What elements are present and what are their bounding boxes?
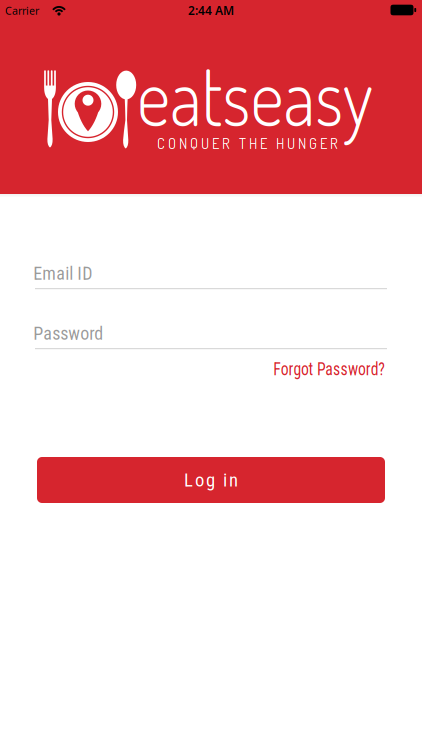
- button[interactable]: L o g i n: [37, 457, 385, 503]
- staticText: 2:44 AM: [188, 2, 234, 18]
- staticText: Forgot Password?: [252, 358, 385, 380]
- button[interactable]: Email ID: [35, 258, 387, 290]
- staticText: Carrier: [5, 3, 39, 18]
- staticText: Password: [33, 323, 103, 344]
- button[interactable]: Password: [35, 318, 387, 350]
- staticText: eatseasy: [137, 43, 399, 145]
- staticText: L o g i n: [184, 469, 238, 491]
- staticText: Email ID: [33, 263, 92, 284]
- staticText: C O N Q U E R T H E H U N G E R: [157, 134, 338, 152]
- button[interactable]: Forgot Password?: [252, 358, 385, 380]
